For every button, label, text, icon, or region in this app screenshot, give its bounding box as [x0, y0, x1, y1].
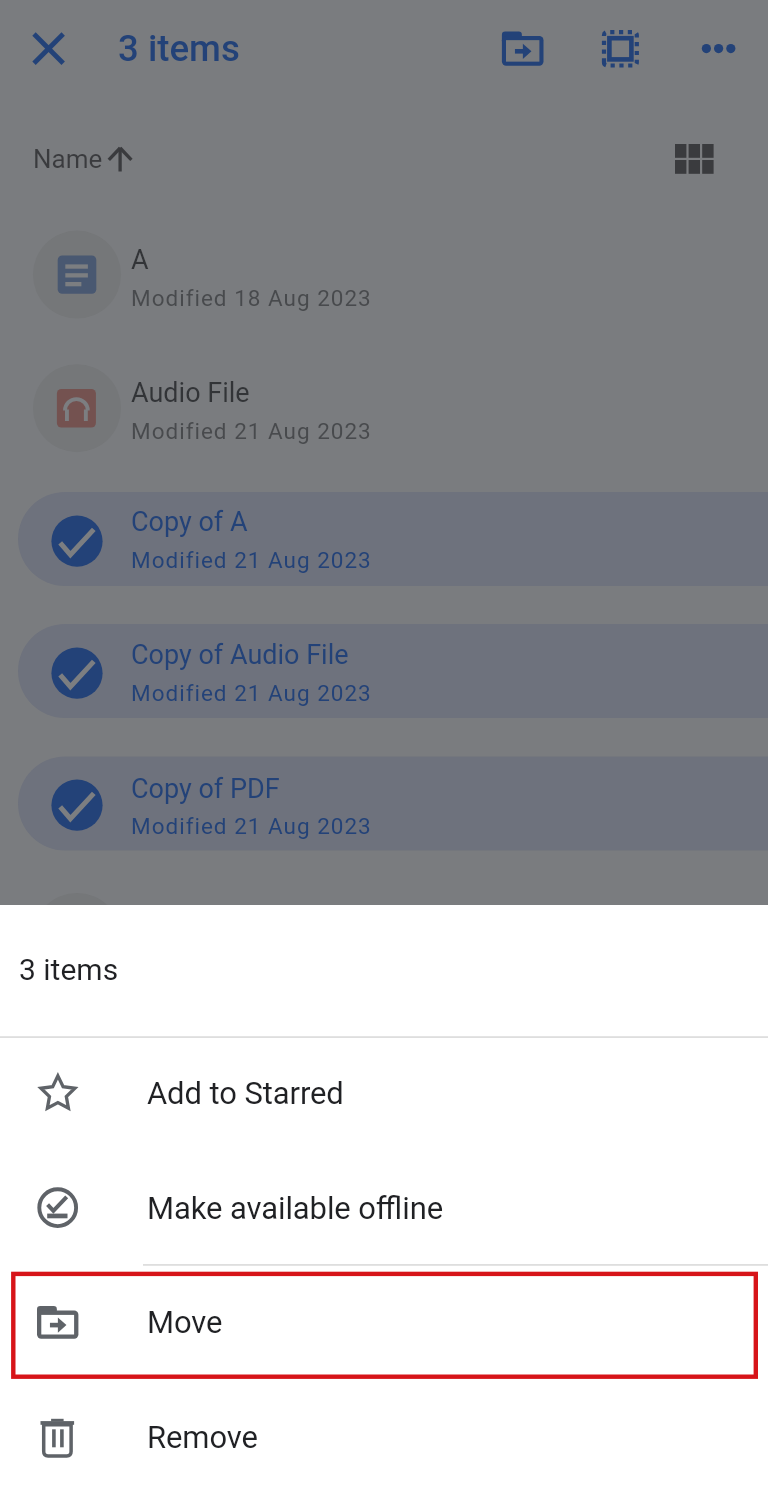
button[interactable]: Move: [0, 1266, 768, 1381]
button[interactable]: Copy of A: [0, 474, 768, 568]
staticText: Name: [33, 144, 103, 174]
button[interactable]: Make available offline: [0, 1152, 768, 1267]
staticText: Copy of Audio File: [131, 639, 349, 671]
button[interactable]: Add to Starred: [0, 1037, 768, 1152]
button[interactable]: Remove: [0, 1381, 768, 1496]
staticText: A: [131, 244, 149, 276]
staticText: Copy of PDF: [131, 773, 280, 805]
button[interactable]: Close selection: [13, 13, 84, 84]
button[interactable]: Name: [18, 129, 146, 189]
staticText: Modified 18 Aug 2023: [131, 285, 372, 311]
staticText: Remove: [147, 1419, 258, 1455]
staticText: Copy of A: [131, 506, 248, 538]
button[interactable]: Copy of Audio File: [0, 606, 768, 700]
staticText: Audio File: [131, 377, 250, 409]
button[interactable]: Audio File: [0, 342, 768, 474]
staticText: Modified 21 Aug 2023: [131, 547, 372, 573]
staticText: 3 items: [118, 27, 240, 70]
button[interactable]: More options: [683, 13, 754, 84]
button[interactable]: A: [0, 209, 768, 341]
staticText: Add to Starred: [147, 1075, 344, 1111]
staticText: Modified 21 Aug 2023: [131, 418, 372, 444]
button[interactable]: Select all: [585, 13, 656, 84]
button[interactable]: Move: [487, 13, 558, 84]
staticText: Move: [147, 1304, 223, 1340]
staticText: 3 items: [19, 952, 119, 987]
button[interactable]: Copy of PDF: [0, 738, 768, 832]
staticText: Make available offline: [147, 1190, 443, 1226]
button[interactable]: Switch to grid view: [659, 124, 730, 195]
staticText: Modified 21 Aug 2023: [131, 813, 372, 839]
staticText: Modified 21 Aug 2023: [131, 680, 372, 706]
